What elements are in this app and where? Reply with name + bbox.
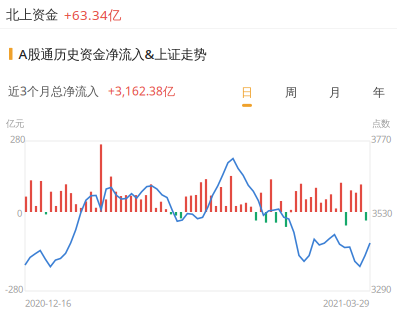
staticText: 月	[329, 85, 341, 100]
button[interactable]: 年	[357, 82, 399, 110]
staticText: 280	[10, 133, 25, 145]
staticText: 日	[241, 85, 253, 100]
button[interactable]: 月	[313, 82, 357, 110]
staticText: 2021-03-29	[323, 297, 369, 309]
staticText: 3290	[371, 283, 391, 295]
staticText: 近3个月总净流入	[8, 83, 99, 99]
staticText: 年	[373, 85, 385, 100]
staticText: 周	[285, 85, 297, 100]
staticText: A股通历史资金净流入&上证走势	[18, 45, 206, 63]
staticText: 北上资金	[6, 7, 58, 23]
staticText: 0	[17, 207, 22, 219]
button[interactable]: 周	[269, 82, 313, 110]
staticText: +63.34亿	[64, 6, 121, 24]
staticText: +3,162.38亿	[99, 83, 175, 99]
staticText: 亿元	[6, 118, 24, 129]
staticText: 2020-12-16	[25, 297, 71, 309]
staticText: 3530	[372, 207, 392, 219]
staticText: 3770	[371, 133, 391, 145]
button[interactable]: 日	[225, 82, 269, 110]
staticText: 点数	[372, 118, 390, 129]
staticText: -280	[5, 283, 23, 295]
